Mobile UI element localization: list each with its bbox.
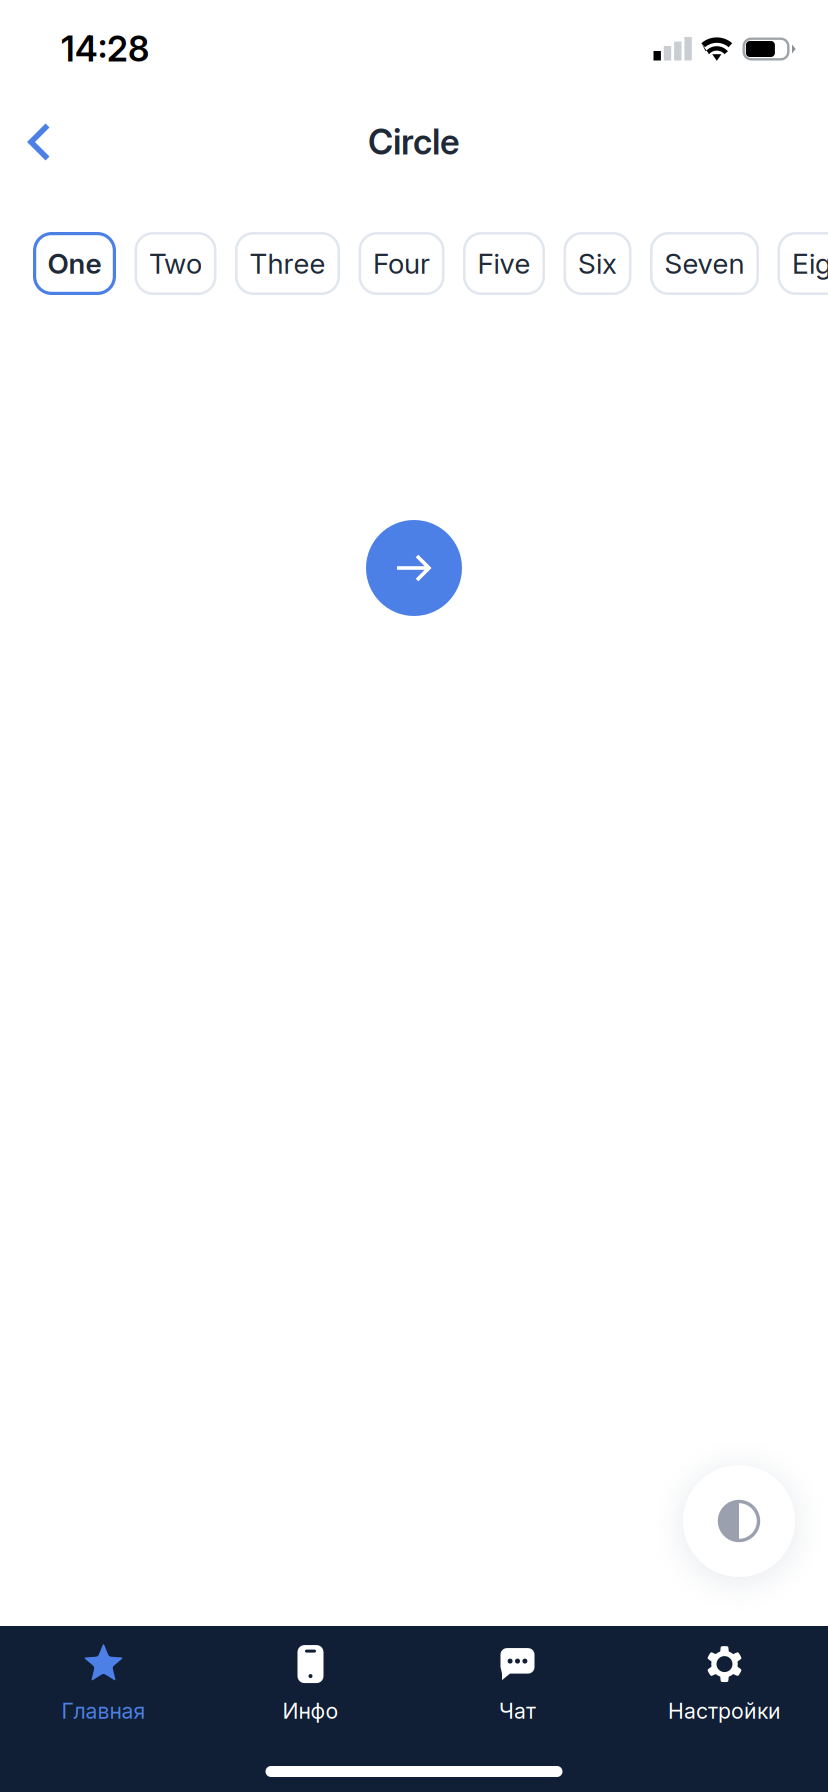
button[interactable]: Four	[358, 232, 444, 295]
staticText: One	[47, 247, 101, 280]
button[interactable]: Three	[235, 232, 340, 295]
button[interactable]: Five	[463, 232, 545, 295]
staticText: Seven	[664, 247, 744, 280]
button[interactable]: One	[33, 232, 116, 295]
button[interactable]: Contrast	[683, 1465, 795, 1577]
staticText: Circle	[368, 121, 460, 163]
staticText: Three	[249, 247, 325, 280]
button[interactable]: Eight	[777, 232, 828, 295]
staticText: 14:28	[61, 28, 149, 70]
staticText: Five	[477, 247, 530, 280]
staticText: Four	[373, 247, 430, 280]
button[interactable]: Six	[563, 232, 631, 295]
button[interactable]: Инфо	[207, 1630, 414, 1738]
button[interactable]: Back	[0, 104, 77, 179]
staticText: Главная	[61, 1698, 145, 1724]
staticText: Eight	[792, 247, 828, 280]
button[interactable]: Настройки	[621, 1630, 828, 1738]
staticText: Six	[578, 247, 617, 280]
staticText: Чат	[499, 1698, 536, 1724]
button[interactable]: Next	[366, 520, 462, 616]
button[interactable]: Чат	[414, 1630, 621, 1738]
staticText: Two	[149, 247, 202, 280]
staticText: Инфо	[282, 1698, 338, 1724]
staticText: Настройки	[668, 1698, 781, 1724]
button[interactable]: Главная	[0, 1630, 207, 1738]
button[interactable]: Two	[134, 232, 216, 295]
button[interactable]: Seven	[650, 232, 759, 295]
